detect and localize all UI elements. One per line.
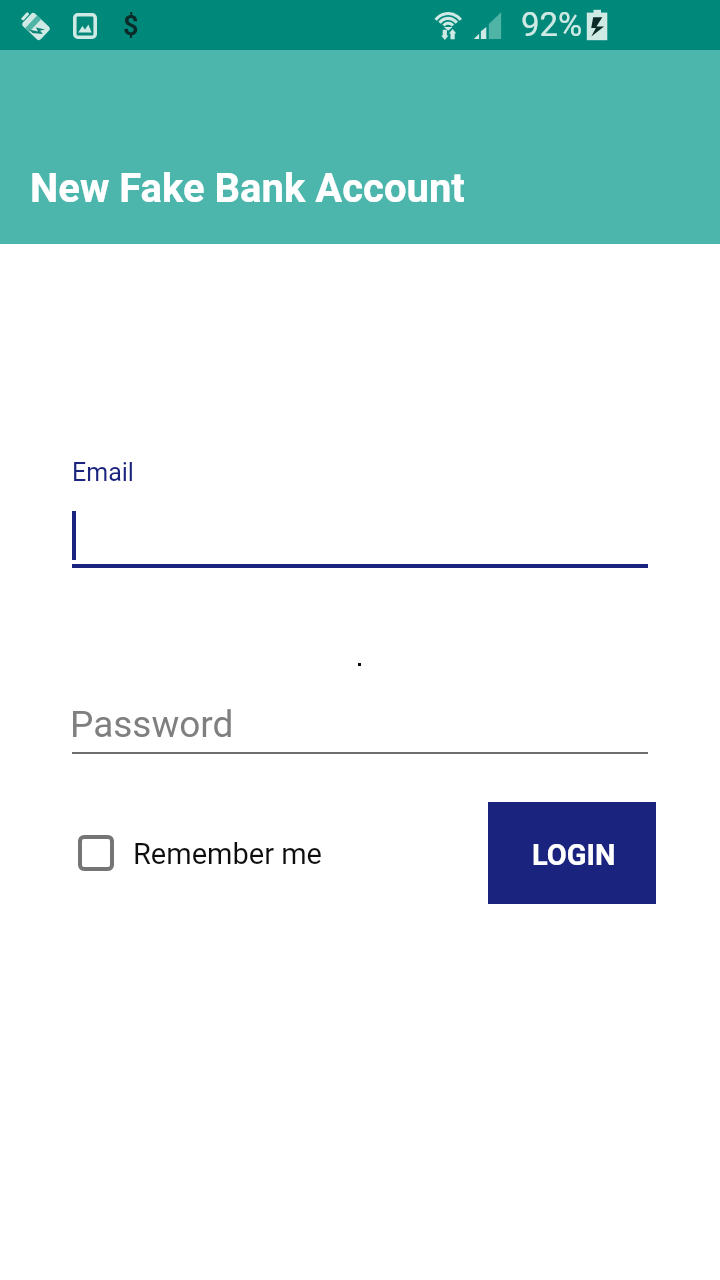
button[interactable]: Remember me checkbox bbox=[58, 818, 322, 888]
button[interactable]: LOGIN bbox=[488, 802, 656, 904]
button[interactable]: Password bbox=[72, 690, 648, 754]
staticText: $ bbox=[123, 10, 139, 42]
other: Remember me checkbox bbox=[58, 818, 133, 888]
staticText: New Fake Bank Account bbox=[30, 165, 465, 212]
staticText: LOGIN bbox=[532, 838, 616, 872]
staticText: Password bbox=[70, 703, 234, 746]
staticText: Remember me bbox=[133, 837, 322, 871]
staticText: 92% bbox=[521, 5, 583, 44]
button[interactable]: Email bbox=[72, 440, 648, 572]
staticText: Email bbox=[72, 458, 134, 487]
